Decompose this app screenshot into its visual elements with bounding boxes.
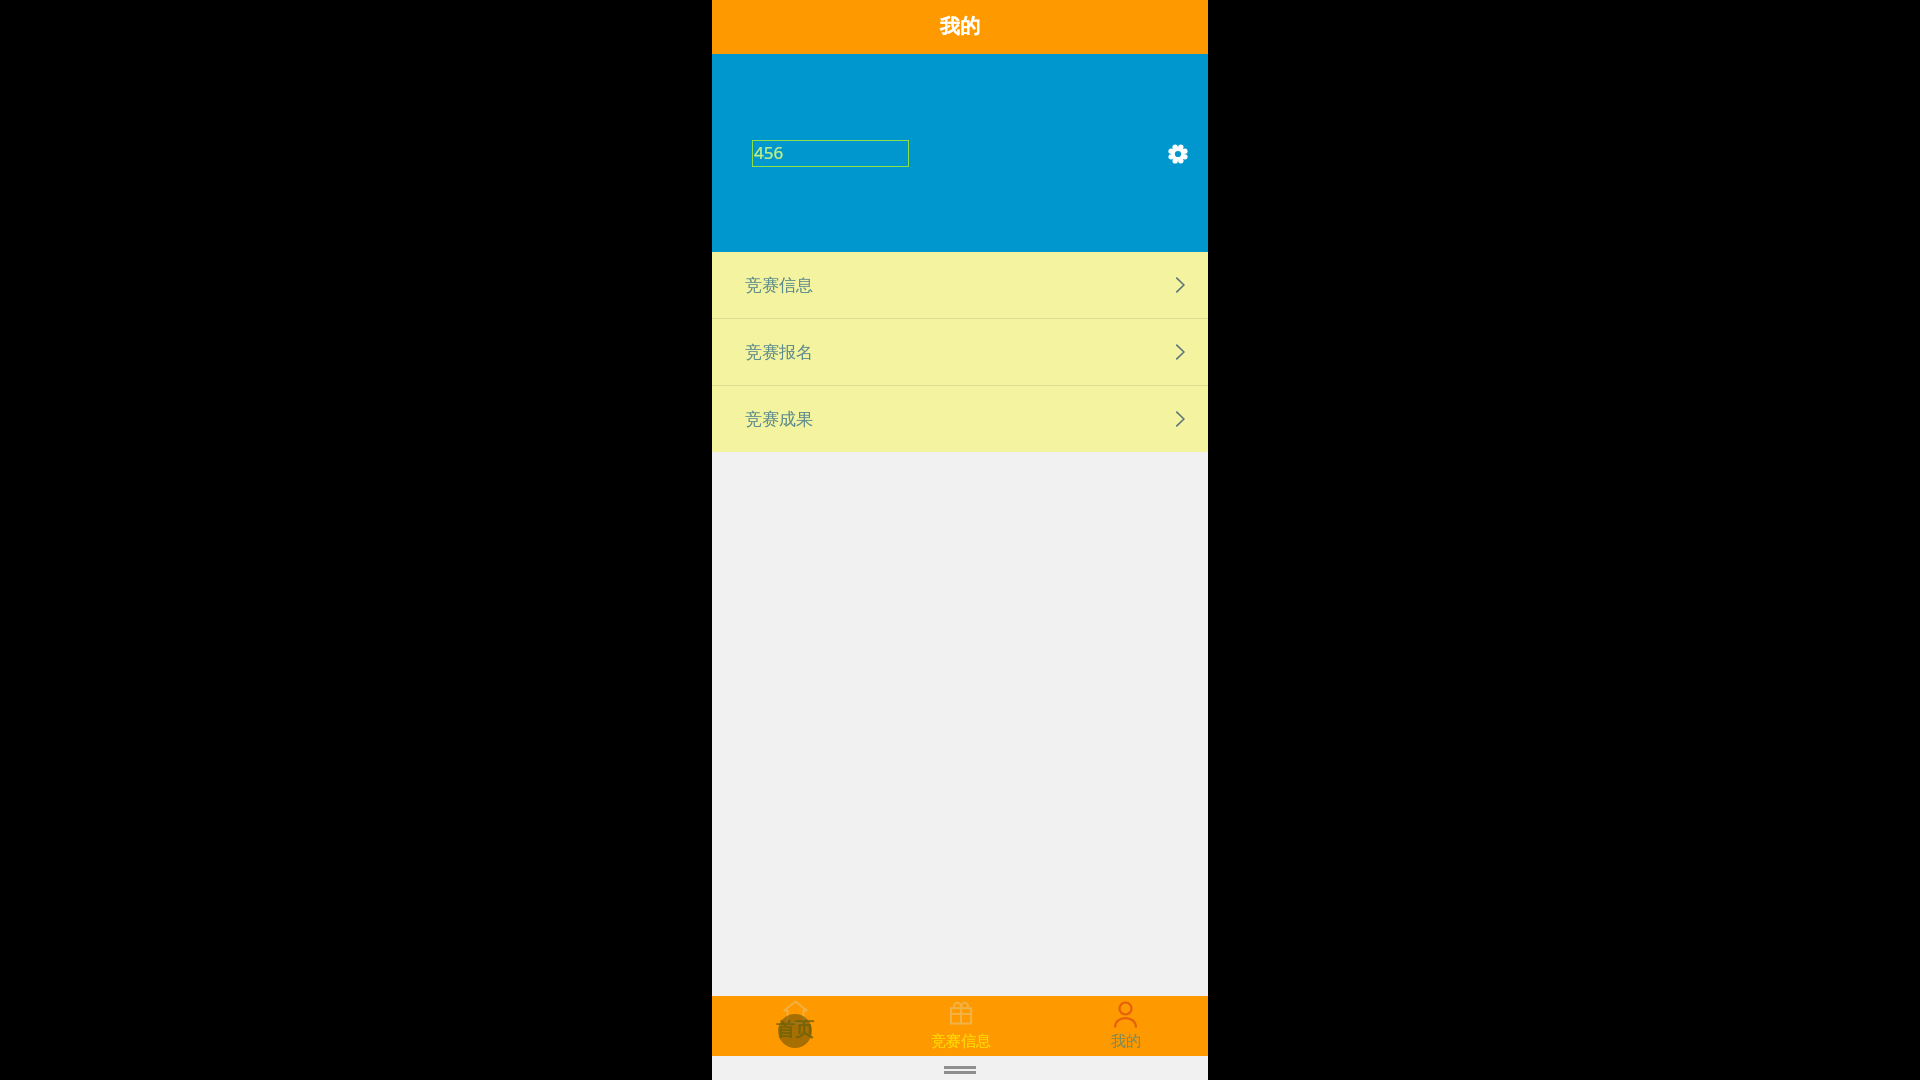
staticText: 竞赛信息 <box>931 1032 991 1051</box>
staticText: 456 <box>754 141 784 164</box>
button[interactable]: 456 <box>752 140 909 167</box>
staticText: 竞赛成果 <box>745 409 813 430</box>
button[interactable]: 首页 <box>712 996 878 1056</box>
staticText: 首页 <box>776 1018 814 1042</box>
button[interactable]: 竞赛信息 <box>712 252 1208 318</box>
staticText: 我的 <box>940 14 980 39</box>
button[interactable]: 竞赛成果 <box>712 386 1208 452</box>
staticText: 我的 <box>1111 1032 1141 1051</box>
staticText: 竞赛报名 <box>745 342 813 363</box>
button[interactable]: 竞赛信息 <box>878 996 1043 1056</box>
staticText: 竞赛信息 <box>745 275 813 296</box>
button[interactable]: Settings <box>1163 139 1193 169</box>
button[interactable]: 我的 <box>1043 996 1208 1056</box>
button[interactable]: 竞赛报名 <box>712 319 1208 385</box>
